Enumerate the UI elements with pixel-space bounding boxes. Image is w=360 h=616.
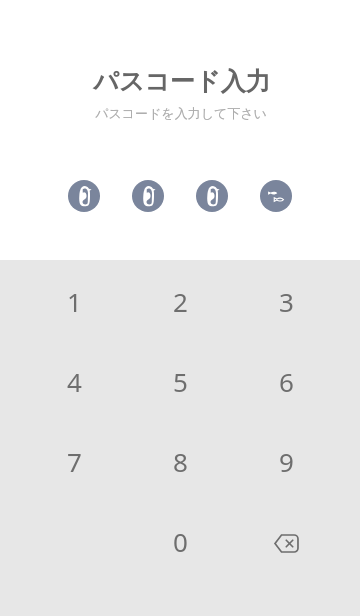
button[interactable]: 9 (233, 421, 339, 501)
other: Passcode entry progress (0, 180, 360, 212)
button[interactable]: 8 (127, 421, 233, 501)
button[interactable]: 2 (127, 261, 233, 341)
button[interactable]: 4 (21, 341, 127, 421)
staticText: 7 (67, 444, 82, 479)
button[interactable]: 0 (127, 501, 233, 581)
staticText: 8 (173, 444, 188, 479)
button[interactable]: 3 (233, 261, 339, 341)
button[interactable]: 7 (21, 421, 127, 501)
staticText: 2 (173, 284, 188, 319)
staticText: 4 (67, 364, 82, 399)
staticText: 9 (279, 444, 294, 479)
button[interactable]: 6 (233, 341, 339, 421)
staticText: 0 (173, 524, 188, 559)
button[interactable]: 1 (21, 261, 127, 341)
staticText: 6 (279, 364, 294, 399)
button[interactable]: 5 (127, 341, 233, 421)
staticText: 5 (173, 364, 188, 399)
staticText: 3 (279, 284, 294, 319)
button[interactable]: Delete (233, 501, 339, 581)
staticText: 1 (67, 284, 82, 319)
staticText: パスコード入力 (93, 66, 271, 97)
staticText: パスコードを入力して下さい (95, 105, 267, 121)
